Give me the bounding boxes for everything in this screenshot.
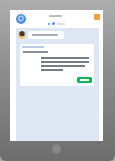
button[interactable]: Confirm: [77, 77, 92, 83]
button[interactable]: Notifications: [94, 14, 100, 20]
button[interactable]: [28, 31, 64, 39]
button[interactable]: Confirm: [20, 44, 94, 86]
button[interactable]: App logo: [16, 14, 26, 24]
